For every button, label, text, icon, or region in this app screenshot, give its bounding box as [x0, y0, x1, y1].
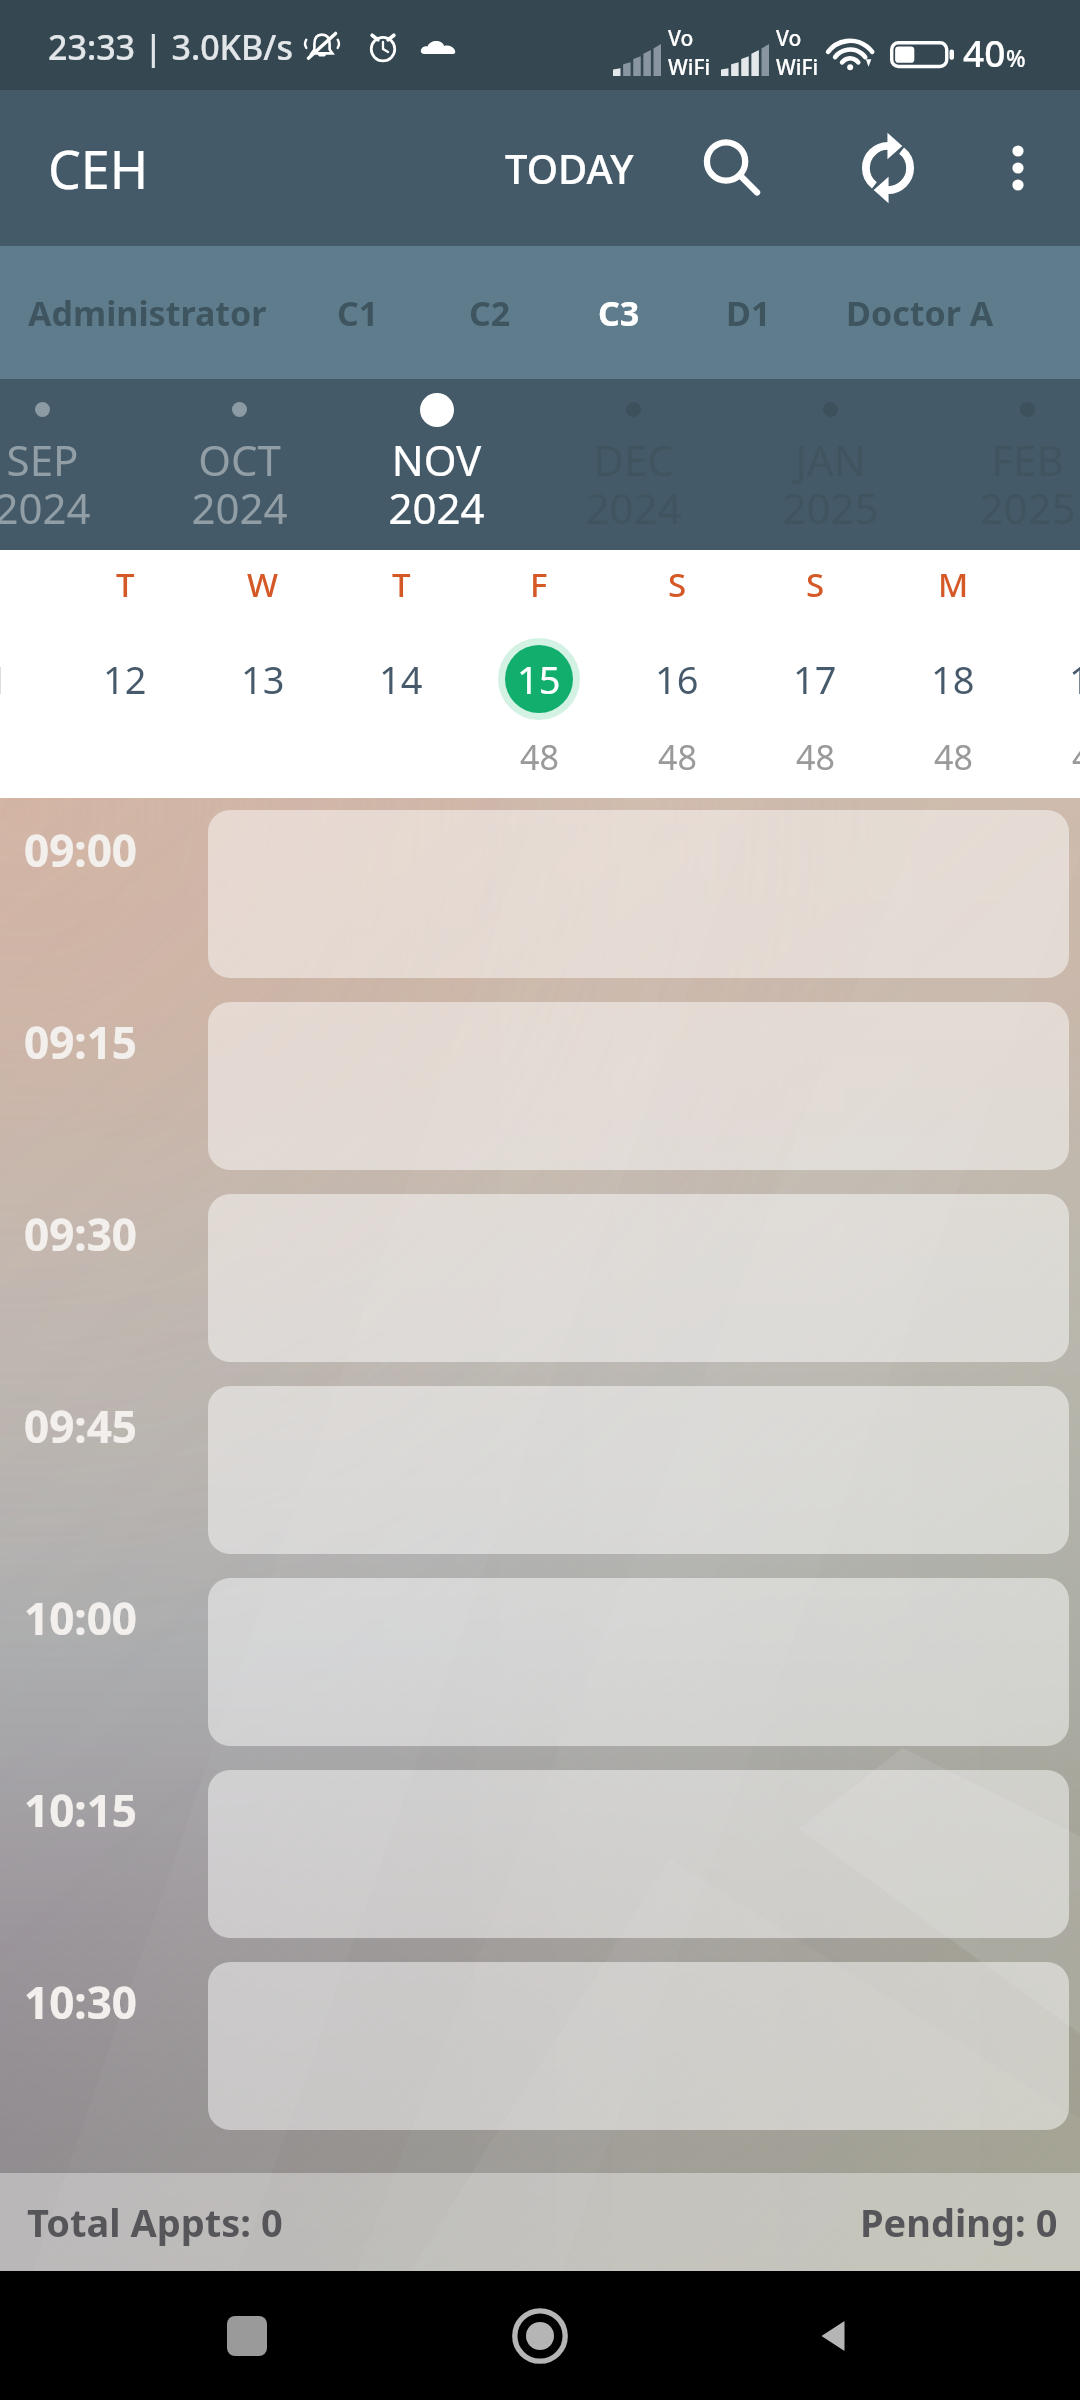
button[interactable]: F	[470, 550, 608, 798]
staticText: 10:15	[24, 1780, 138, 1840]
staticText: W	[247, 562, 279, 607]
staticText: 48	[796, 734, 835, 780]
staticText: C1	[337, 290, 379, 336]
staticText: WiFi	[668, 53, 711, 82]
button[interactable]: 10:00	[0, 1578, 1080, 1746]
button[interactable]: SEP 2024	[0, 379, 141, 550]
staticText: 40	[963, 27, 1006, 77]
staticText: JAN 2025	[782, 431, 879, 536]
staticText: Administrator	[28, 290, 267, 336]
button[interactable]: 09:15	[0, 1002, 1080, 1170]
staticText: D1	[726, 290, 771, 336]
staticText: T	[392, 562, 411, 607]
button[interactable]: 09:00	[0, 810, 1080, 978]
staticText: 48	[520, 734, 559, 780]
button[interactable]: W	[194, 550, 332, 798]
staticText: WiFi	[776, 53, 819, 82]
staticText: 16	[655, 653, 699, 705]
staticText: 09:30	[24, 1204, 138, 1264]
button[interactable]: 09:45	[0, 1386, 1080, 1554]
button[interactable]: Refresh	[838, 118, 938, 218]
staticText: Vo	[668, 24, 694, 53]
staticText: 18	[931, 653, 975, 705]
staticText: %	[1006, 42, 1026, 73]
staticText: 48	[1072, 734, 1080, 780]
button[interactable]: S	[608, 550, 746, 798]
staticText: OCT 2024	[191, 431, 288, 536]
staticText: Pending: 0	[860, 2196, 1058, 2248]
staticText: 11	[0, 653, 9, 705]
button[interactable]: Home	[494, 2290, 586, 2382]
staticText: FEB 2025	[979, 431, 1076, 536]
staticText: 14	[379, 653, 423, 705]
staticText: C3	[598, 290, 640, 336]
staticText: 23:33 | 3.0KB/s	[48, 24, 293, 70]
button[interactable]: Doctor A	[816, 246, 1024, 379]
staticText: 19	[1069, 653, 1080, 705]
staticText: Total Appts: 0	[27, 2196, 283, 2248]
button[interactable]: 10:15	[0, 1770, 1080, 1938]
staticText: 15	[517, 653, 561, 705]
button[interactable]: More options	[968, 118, 1068, 218]
staticText: 48	[934, 734, 973, 780]
staticText: 12	[103, 653, 147, 705]
staticText: TODAY	[505, 141, 634, 195]
button[interactable]: 10:30	[0, 1962, 1080, 2130]
staticText: F	[530, 562, 548, 607]
button[interactable]: NOV 2024	[338, 379, 535, 550]
staticText: 10:00	[24, 1588, 138, 1648]
button[interactable]: Search	[682, 118, 782, 218]
staticText: 09:00	[24, 820, 138, 880]
button[interactable]: S	[746, 550, 884, 798]
button[interactable]: TODAY	[487, 111, 652, 225]
button[interactable]: Back	[787, 2290, 879, 2382]
button[interactable]: T	[56, 550, 194, 798]
staticText: SEP 2024	[0, 431, 91, 536]
staticText: DEC 2024	[585, 431, 682, 536]
staticText: C2	[469, 290, 511, 336]
staticText: T	[116, 562, 135, 607]
button[interactable]: Recents	[201, 2290, 293, 2382]
button[interactable]: M	[884, 550, 1022, 798]
staticText: 13	[241, 653, 285, 705]
staticText: M	[938, 562, 969, 607]
staticText: 17	[793, 653, 837, 705]
button[interactable]: C1	[294, 246, 422, 379]
staticText: 09:15	[24, 1012, 138, 1072]
staticText: S	[806, 562, 825, 607]
button[interactable]: CEH	[0, 113, 169, 224]
staticText: Vo	[776, 24, 802, 53]
button[interactable]: T	[332, 550, 470, 798]
button[interactable]: C3	[558, 246, 680, 379]
button[interactable]: 09:30	[0, 1194, 1080, 1362]
staticText: S	[668, 562, 687, 607]
button[interactable]: C2	[422, 246, 558, 379]
button[interactable]: Administrator	[0, 246, 294, 379]
button[interactable]: OCT 2024	[141, 379, 338, 550]
staticText: Doctor A	[846, 290, 994, 336]
staticText: 48	[658, 734, 697, 780]
staticText: 09:45	[24, 1396, 138, 1456]
button[interactable]: T	[1022, 550, 1080, 798]
staticText: CEH	[48, 133, 149, 204]
staticText: NOV 2024	[388, 431, 485, 536]
button[interactable]: D1	[680, 246, 816, 379]
staticText: 10:30	[24, 1972, 138, 2032]
